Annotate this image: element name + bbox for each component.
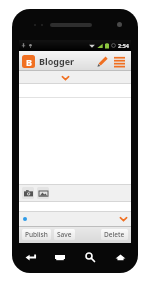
staticText: 2:54 <box>118 42 129 49</box>
button[interactable] <box>19 71 131 84</box>
button[interactable]: Delete <box>101 229 128 240</box>
button[interactable]: Search <box>78 246 102 268</box>
button[interactable]: Save <box>54 229 75 240</box>
staticText: Save <box>57 230 72 239</box>
button[interactable]: Back <box>18 246 42 268</box>
button[interactable]: Insert image <box>37 187 49 199</box>
button[interactable]: Home <box>108 246 132 268</box>
staticText: Publish <box>25 230 48 239</box>
button[interactable]: Publish <box>22 229 51 240</box>
button[interactable]: B <box>22 51 94 71</box>
button[interactable]: Take photo <box>22 187 34 199</box>
button[interactable] <box>19 211 131 226</box>
staticText: Blogger <box>39 55 75 67</box>
button[interactable]: Edit post <box>94 51 111 71</box>
staticText: B <box>26 56 32 68</box>
button[interactable] <box>19 84 131 98</box>
staticText: Delete <box>104 230 125 239</box>
button[interactable]: Menu <box>48 246 72 268</box>
button[interactable]: Menu <box>111 51 128 71</box>
